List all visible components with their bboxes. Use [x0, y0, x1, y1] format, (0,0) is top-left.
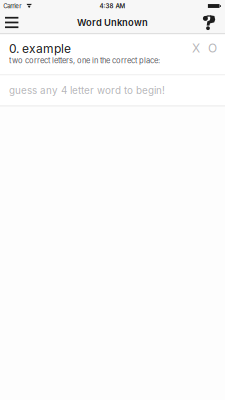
- button[interactable]: Menu: [0, 12, 26, 33]
- staticText: O: [208, 41, 217, 55]
- staticText: 4:38 AM: [99, 2, 125, 10]
- staticText: X: [192, 41, 200, 55]
- staticText: two correct letters, one in the correct …: [9, 56, 160, 65]
- button[interactable]: How to play: [195, 12, 225, 33]
- staticText: 0. example: [9, 41, 71, 56]
- staticText: Word Unknown: [77, 17, 148, 28]
- button[interactable]: guess any 4 letter word to begin!: [0, 75, 225, 105]
- staticText: guess any 4 letter word to begin!: [9, 84, 165, 96]
- staticText: Carrier: [3, 2, 21, 10]
